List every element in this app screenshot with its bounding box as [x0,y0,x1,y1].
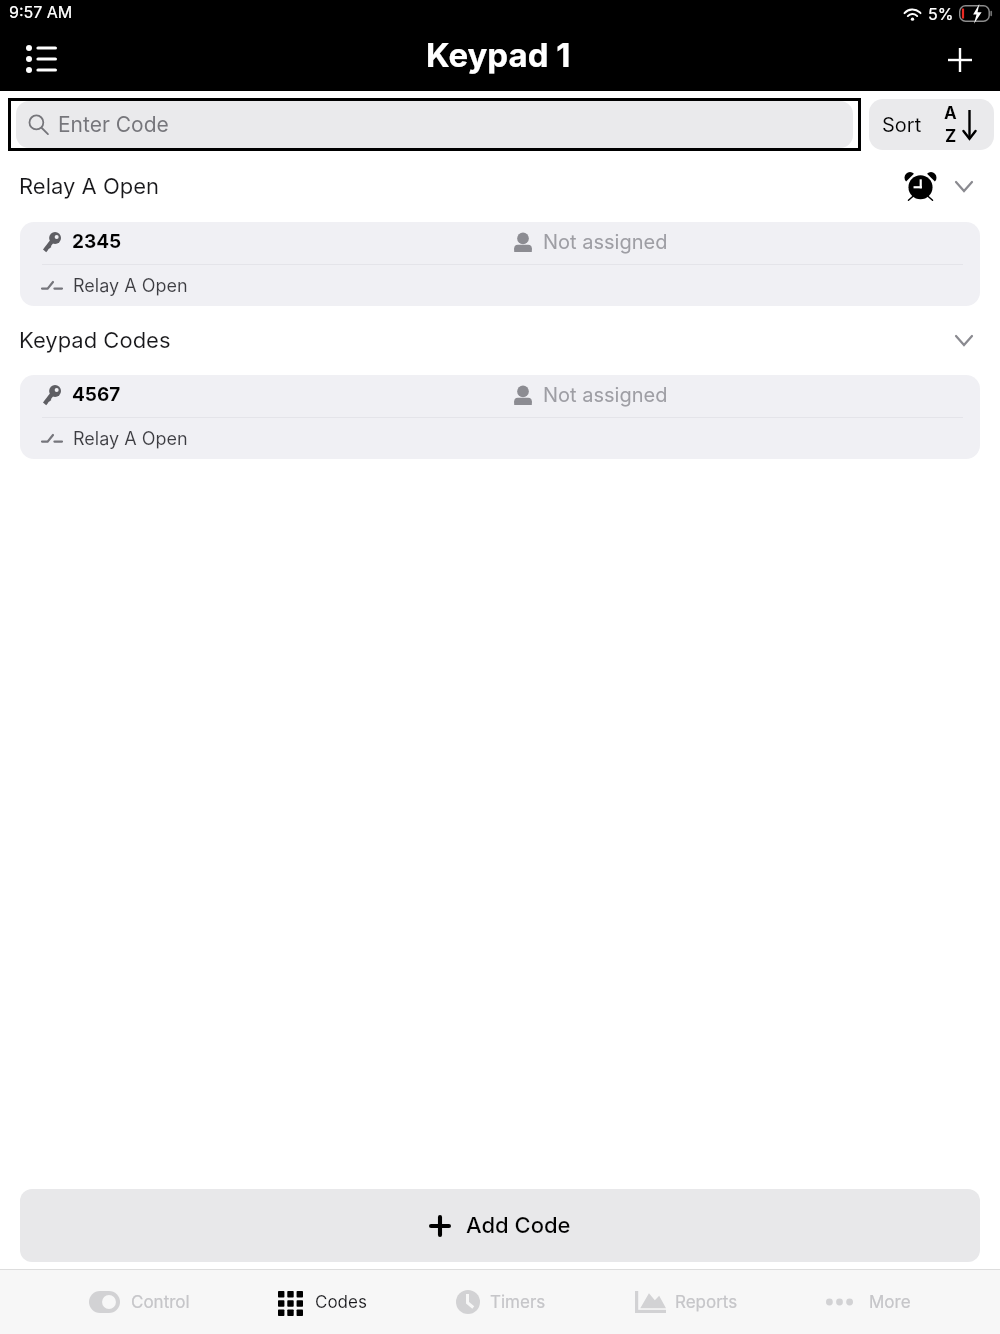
staticText: More [869,1292,911,1313]
staticText: Control [131,1292,190,1313]
button[interactable]: Reports [635,1270,738,1334]
staticText: Not assigned [543,383,668,407]
staticText: 2345 [72,230,122,253]
staticText: A [944,103,957,124]
staticText: Relay A Open [73,428,188,450]
staticText: 5% [928,4,954,23]
button[interactable]: Timers [456,1270,546,1334]
button[interactable]: Add [919,30,1000,91]
button[interactable]: 4567 [20,375,980,459]
staticText: Z [945,126,957,147]
button[interactable]: Relay A Open [0,151,1000,222]
staticText: Relay A Open [19,173,160,200]
button[interactable]: Enter Code [16,101,853,148]
staticText: Sort [882,113,922,137]
staticText: Not assigned [543,230,668,254]
staticText: Reports [675,1292,738,1313]
staticText: Add Code [466,1212,571,1239]
button[interactable]: Add Code [20,1189,980,1262]
staticText: Keypad Codes [19,327,171,354]
staticText: Enter Code [58,112,169,137]
button[interactable]: More [826,1270,911,1334]
staticText: Codes [315,1292,367,1313]
button[interactable]: Keypad Codes [0,306,1000,375]
staticText: Timers [490,1292,546,1313]
button[interactable]: Menu [0,30,83,91]
button[interactable]: 2345 [20,222,980,306]
staticText: 9:57 AM [9,2,73,21]
button[interactable]: Control [89,1270,190,1334]
button[interactable]: Codes [278,1270,367,1334]
button[interactable]: Sort [869,99,994,150]
staticText: 4567 [72,383,121,406]
staticText: Relay A Open [73,275,188,297]
staticText: Keypad 1 [426,35,571,75]
